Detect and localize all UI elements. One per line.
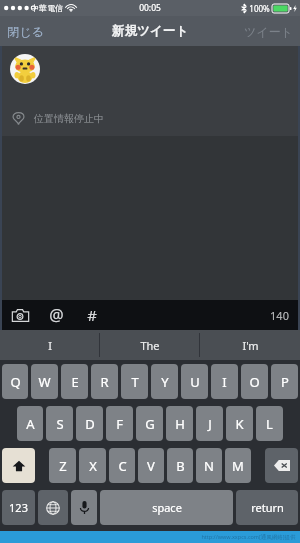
staticText: W — [38, 373, 51, 391]
staticText: P — [281, 373, 289, 391]
button[interactable]: Profile photo — [10, 54, 40, 84]
button[interactable]: F — [106, 406, 133, 441]
staticText: ツイート — [244, 24, 293, 39]
staticText: M — [232, 457, 244, 475]
button[interactable]: M — [225, 448, 251, 483]
button[interactable]: T — [121, 364, 148, 399]
button[interactable]: U — [181, 364, 208, 399]
button[interactable]: Shift — [2, 448, 35, 483]
button[interactable]: H — [166, 406, 193, 441]
button[interactable]: I'm — [200, 330, 300, 360]
button[interactable]: Add photo — [9, 304, 31, 326]
button[interactable]: K — [226, 406, 253, 441]
staticText: I — [48, 338, 52, 353]
staticText: space — [152, 500, 182, 515]
staticText: Q — [10, 373, 21, 391]
button[interactable]: X — [79, 448, 106, 483]
button[interactable]: S — [46, 406, 73, 441]
button[interactable]: space — [100, 490, 233, 525]
staticText: C — [118, 457, 127, 475]
button[interactable]: B — [167, 448, 193, 483]
button[interactable]: V — [138, 448, 164, 483]
button[interactable]: return — [236, 490, 298, 525]
staticText: 位置情報停止中 — [34, 112, 104, 125]
staticText: X — [89, 457, 97, 475]
button[interactable]: C — [109, 448, 135, 483]
staticText: D — [85, 415, 95, 433]
staticText: The — [140, 338, 160, 353]
button[interactable]: Dictation — [71, 490, 97, 525]
staticText: 140 — [270, 308, 289, 323]
staticText: A — [26, 415, 35, 433]
button[interactable]: J — [196, 406, 223, 441]
button[interactable]: 123 — [2, 490, 35, 525]
button[interactable]: Delete — [265, 448, 298, 483]
staticText: Z — [59, 457, 67, 475]
staticText: @ — [49, 304, 64, 326]
button[interactable]: O — [241, 364, 268, 399]
button[interactable]: E — [61, 364, 88, 399]
button[interactable]: I — [0, 330, 100, 360]
staticText: U — [190, 373, 200, 391]
staticText: 新規ツイート — [112, 23, 188, 39]
button[interactable]: P — [271, 364, 298, 399]
staticText: E — [71, 373, 79, 391]
staticText: 100% — [249, 3, 270, 14]
button[interactable]: R — [91, 364, 118, 399]
staticText: O — [249, 373, 260, 391]
staticText: N — [204, 457, 214, 475]
button[interactable]: N — [196, 448, 222, 483]
staticText: S — [56, 415, 64, 433]
button[interactable]: 位置情報停止中 — [0, 104, 300, 132]
button[interactable]: Mention — [45, 304, 67, 326]
staticText: T — [131, 373, 139, 391]
staticText: Y — [161, 373, 169, 391]
button[interactable]: W — [31, 364, 58, 399]
staticText: R — [100, 373, 109, 391]
staticText: 00:05 — [139, 2, 161, 14]
button[interactable]: G — [136, 406, 163, 441]
button[interactable]: Switch keyboard — [38, 490, 68, 525]
button[interactable]: Q — [2, 364, 28, 399]
staticText: B — [176, 457, 185, 475]
button[interactable]: L — [256, 406, 283, 441]
button[interactable]: ツイート — [237, 18, 300, 45]
staticText: V — [147, 457, 155, 475]
staticText: 中華電信 — [31, 3, 63, 13]
button[interactable]: Z — [49, 448, 76, 483]
staticText: 閉じる — [7, 24, 44, 39]
button[interactable]: Y — [151, 364, 178, 399]
staticText: http://www.xxpcs.com[通風網絡]提供 — [201, 533, 296, 541]
staticText: # — [87, 305, 97, 325]
staticText: G — [145, 415, 155, 433]
staticText: I'm — [242, 338, 259, 353]
button[interactable]: A — [17, 406, 43, 441]
staticText: I — [222, 373, 227, 391]
staticText: F — [116, 415, 123, 433]
button[interactable]: 閉じる — [0, 18, 51, 45]
button[interactable]: Hashtag — [81, 304, 103, 326]
staticText: L — [266, 415, 273, 433]
staticText: 123 — [9, 500, 28, 515]
staticText: J — [208, 415, 212, 433]
staticText: H — [175, 415, 185, 433]
button[interactable]: I — [211, 364, 238, 399]
staticText: K — [235, 415, 244, 433]
button[interactable]: D — [76, 406, 103, 441]
button[interactable]: The — [100, 330, 200, 360]
staticText: return — [251, 500, 284, 515]
